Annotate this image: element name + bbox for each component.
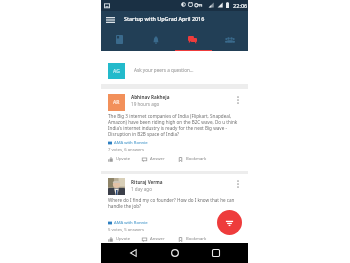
button[interactable]: Answer [142,154,165,164]
button[interactable]: Upvote [108,234,131,244]
staticText: AG [113,68,120,75]
staticText: Abhinav Rakheja [131,94,170,100]
staticText: Bookmark [186,156,207,162]
button[interactable]: Bookmark [178,154,207,164]
staticText: AR [113,99,120,106]
staticText: 22:06 [233,2,248,10]
button[interactable]: AG [101,51,248,84]
staticText: The Big 3 internet companies of India (F… [108,113,241,137]
button[interactable]: Answer [142,234,165,244]
button[interactable]: Open navigation menu [104,14,117,26]
staticText: Bookmark [186,236,207,242]
button[interactable]: Notifications [137,29,174,52]
button[interactable]: Back [124,244,142,262]
button[interactable]: More options [235,95,241,105]
button[interactable]: AMA with Ronnie [108,220,148,226]
staticText: Upvote [116,236,131,242]
staticText: AMA with Ronnie [114,220,148,226]
button[interactable]: Recent apps [207,244,225,262]
button[interactable]: AR [101,89,248,171]
staticText: Where do I find my co founder? How do I … [108,197,241,209]
button[interactable]: AMA with Ronnie [108,140,148,146]
button[interactable]: Rituraj Verma [101,174,248,243]
staticText: Rituraj Verma [131,179,163,185]
staticText: Answer [150,236,165,242]
button[interactable]: Filter [217,210,242,235]
staticText: 7 votes, 6 answers [108,147,145,153]
staticText: 19 hours ago [131,101,160,107]
button[interactable]: Members [211,29,248,52]
button[interactable]: Home [166,244,184,262]
staticText: 5 votes, 5 answers [108,227,145,233]
staticText: Answer [150,156,165,162]
staticText: 1 day ago [131,186,152,192]
button[interactable]: Upvote [108,154,131,164]
staticText: AMA with Ronnie [114,140,148,146]
button[interactable]: More options [235,179,241,189]
staticText: Upvote [116,156,131,162]
button[interactable]: Bookmark [178,234,207,244]
button[interactable]: Discussions [174,29,211,52]
staticText: Ask your peers a question... [134,67,194,73]
button[interactable]: Feed [101,29,137,52]
staticText: Startup with UpGrad April 2016 [124,15,205,22]
